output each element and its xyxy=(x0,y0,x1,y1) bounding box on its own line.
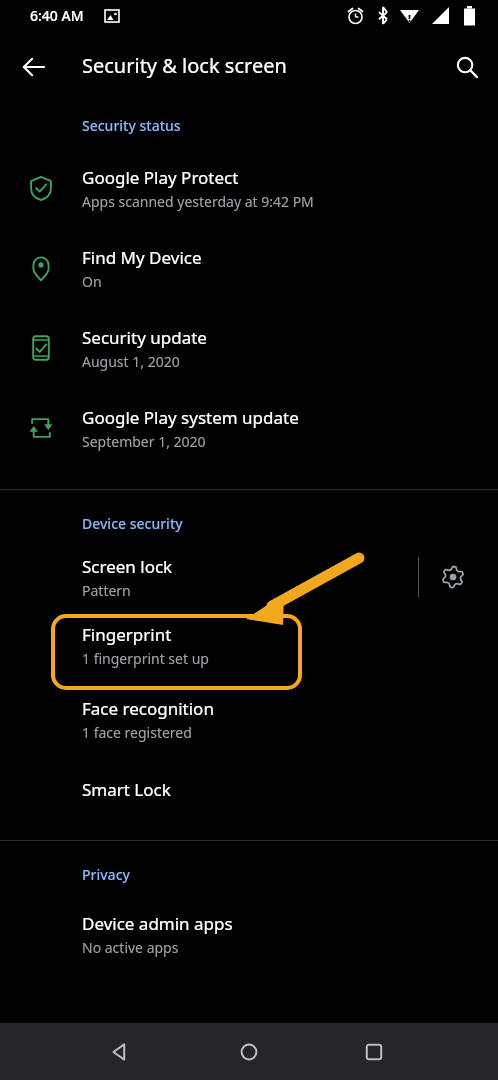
button[interactable]: Google Play Protect xyxy=(0,148,498,228)
staticText: Device admin apps xyxy=(82,912,233,935)
staticText: Device security xyxy=(82,514,183,533)
button[interactable]: Search xyxy=(446,46,488,88)
staticText: Privacy xyxy=(82,865,130,884)
staticText: Google Play Protect xyxy=(82,166,239,189)
staticText: Google Play system update xyxy=(82,406,299,429)
button[interactable]: Fingerprint xyxy=(0,608,498,682)
staticText: No active apps xyxy=(82,938,179,957)
button[interactable]: Back xyxy=(100,1033,138,1071)
staticText: September 1, 2020 xyxy=(82,432,206,451)
staticText: 1 fingerprint set up xyxy=(82,649,209,668)
button[interactable]: Google Play system update xyxy=(0,388,498,468)
staticText: Pattern xyxy=(82,581,131,600)
staticText: Face recognition xyxy=(82,697,214,720)
button[interactable]: Face recognition xyxy=(0,682,498,756)
button[interactable]: Recent apps xyxy=(355,1033,393,1071)
button[interactable]: Screen lock xyxy=(0,546,498,608)
staticText: Apps scanned yesterday at 9:42 PM xyxy=(82,192,314,211)
button[interactable]: Device admin apps xyxy=(0,897,498,971)
staticText: Security status xyxy=(82,116,181,135)
staticText: 1 face registered xyxy=(82,723,192,742)
button[interactable]: Back xyxy=(12,45,56,89)
staticText: On xyxy=(82,272,102,291)
staticText: Smart Lock xyxy=(82,778,171,801)
button[interactable]: Smart Lock xyxy=(0,756,498,822)
button[interactable]: Find My Device xyxy=(0,228,498,308)
staticText: August 1, 2020 xyxy=(82,352,180,371)
staticText: Fingerprint xyxy=(82,623,172,646)
staticText: Find My Device xyxy=(82,246,202,269)
staticText: Security update xyxy=(82,326,207,349)
staticText: Security & lock screen xyxy=(82,52,287,79)
button[interactable]: Home xyxy=(230,1033,268,1071)
button[interactable]: Security update xyxy=(0,308,498,388)
staticText: Screen lock xyxy=(82,555,173,578)
button[interactable]: Screen lock settings xyxy=(436,560,470,594)
staticText: 6:40 AM xyxy=(30,6,84,25)
